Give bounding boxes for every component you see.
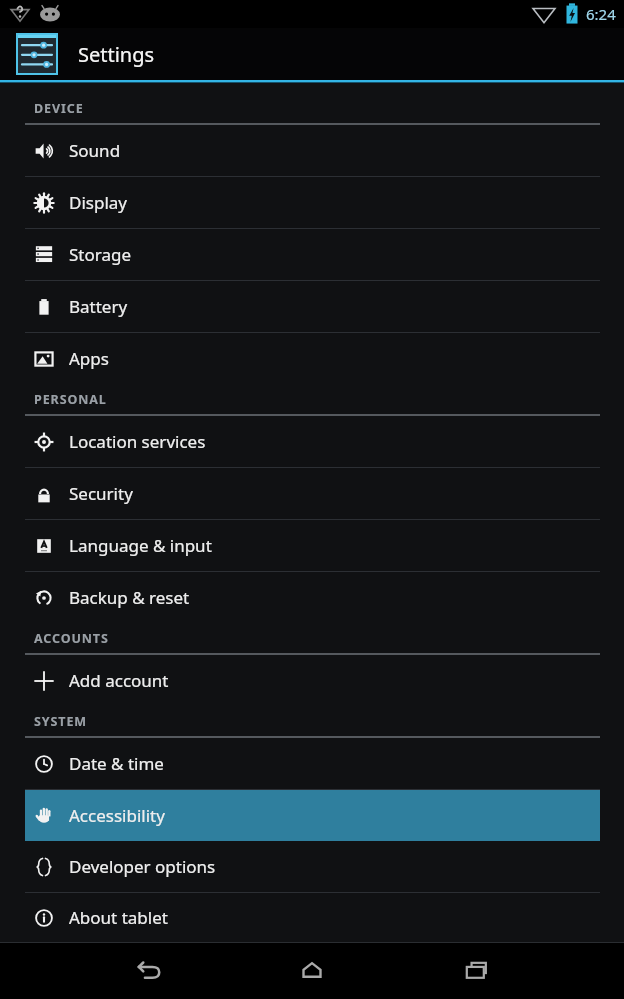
staticText: DEVICE: [34, 100, 84, 117]
button[interactable]: Home: [279, 945, 345, 997]
button[interactable]: Display: [0, 177, 624, 228]
staticText: Battery: [69, 295, 128, 318]
staticText: Apps: [69, 347, 109, 370]
button[interactable]: Apps: [0, 333, 624, 384]
button[interactable]: Back: [114, 945, 180, 997]
staticText: Accessibility: [69, 804, 165, 827]
staticText: Settings: [78, 41, 155, 68]
button[interactable]: Add account: [0, 655, 624, 706]
button[interactable]: Security: [0, 468, 624, 519]
button[interactable]: Location services: [0, 416, 624, 467]
staticText: Storage: [69, 243, 132, 266]
staticText: PERSONAL: [34, 391, 107, 408]
button[interactable]: Recent apps: [444, 945, 510, 997]
staticText: Display: [69, 191, 127, 214]
button[interactable]: Backup & reset: [0, 572, 624, 623]
staticText: 6:24: [586, 4, 616, 24]
button[interactable]: Language & input: [0, 520, 624, 571]
button[interactable]: About tablet: [0, 893, 624, 942]
staticText: Sound: [69, 139, 121, 162]
button[interactable]: Developer options: [0, 841, 624, 892]
staticText: Date & time: [69, 752, 164, 775]
button[interactable]: Accessibility: [0, 790, 624, 841]
button[interactable]: Date & time: [0, 738, 624, 789]
staticText: ACCOUNTS: [34, 630, 109, 647]
button[interactable]: Battery: [0, 281, 624, 332]
staticText: About tablet: [69, 906, 168, 929]
staticText: Language & input: [69, 534, 212, 557]
staticText: Security: [69, 482, 133, 505]
button[interactable]: Storage: [0, 229, 624, 280]
staticText: Developer options: [69, 855, 216, 878]
button[interactable]: Sound: [0, 125, 624, 176]
staticText: Location services: [69, 430, 206, 453]
staticText: Add account: [69, 669, 169, 692]
staticText: SYSTEM: [34, 713, 88, 730]
staticText: Backup & reset: [69, 586, 190, 609]
